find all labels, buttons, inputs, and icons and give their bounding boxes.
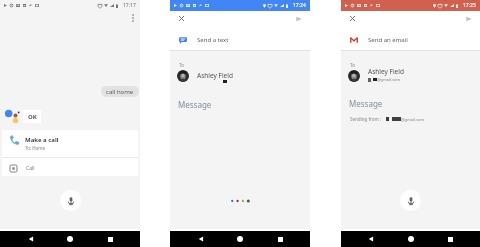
button[interactable]: Voice input: [60, 190, 81, 211]
button[interactable]: Voice input: [400, 190, 421, 211]
button[interactable]: Back: [362, 231, 380, 247]
button[interactable]: Send: [462, 12, 475, 25]
staticText: Message: [178, 99, 212, 110]
staticText: 17:24: [293, 2, 306, 9]
button[interactable]: Close: [175, 12, 188, 25]
button[interactable]: Home: [61, 231, 79, 247]
staticText: OK: [28, 113, 37, 121]
button[interactable]: Home: [402, 231, 420, 247]
button[interactable]: Send a text: [179, 36, 229, 44]
button[interactable]: call home: [101, 86, 139, 97]
staticText: Make a call: [25, 136, 59, 144]
button[interactable]: Call: [2, 158, 138, 176]
button[interactable]: Recent apps: [441, 231, 459, 247]
staticText: 17:17: [123, 2, 136, 9]
button[interactable]: Recent apps: [101, 231, 119, 247]
staticText: Ashley Field: [368, 67, 404, 76]
staticText: 17:25: [463, 2, 476, 9]
staticText: To: [179, 62, 184, 68]
staticText: Call: [26, 165, 35, 172]
staticText: @gmail.com: [377, 77, 401, 82]
staticText: Send an email: [368, 36, 408, 44]
staticText: To: Home: [25, 145, 46, 151]
button[interactable]: Send an email: [350, 36, 408, 44]
staticText: Ashley Field: [197, 71, 233, 80]
button[interactable]: Close: [346, 12, 359, 25]
staticText: Sending from :: [350, 116, 382, 122]
staticText: Send a text: [197, 36, 229, 44]
button[interactable]: Recent apps: [271, 231, 289, 247]
button[interactable]: Make a call: [2, 130, 138, 157]
button[interactable]: Send: [292, 12, 305, 25]
button[interactable]: Home: [231, 231, 249, 247]
staticText: @gmail.com: [401, 117, 425, 122]
button[interactable]: Back: [192, 231, 210, 247]
staticText: To: [350, 62, 355, 68]
button[interactable]: More options: [128, 13, 138, 23]
button[interactable]: Back: [22, 231, 40, 247]
staticText: Message: [349, 98, 383, 109]
staticText: call home: [106, 88, 134, 96]
